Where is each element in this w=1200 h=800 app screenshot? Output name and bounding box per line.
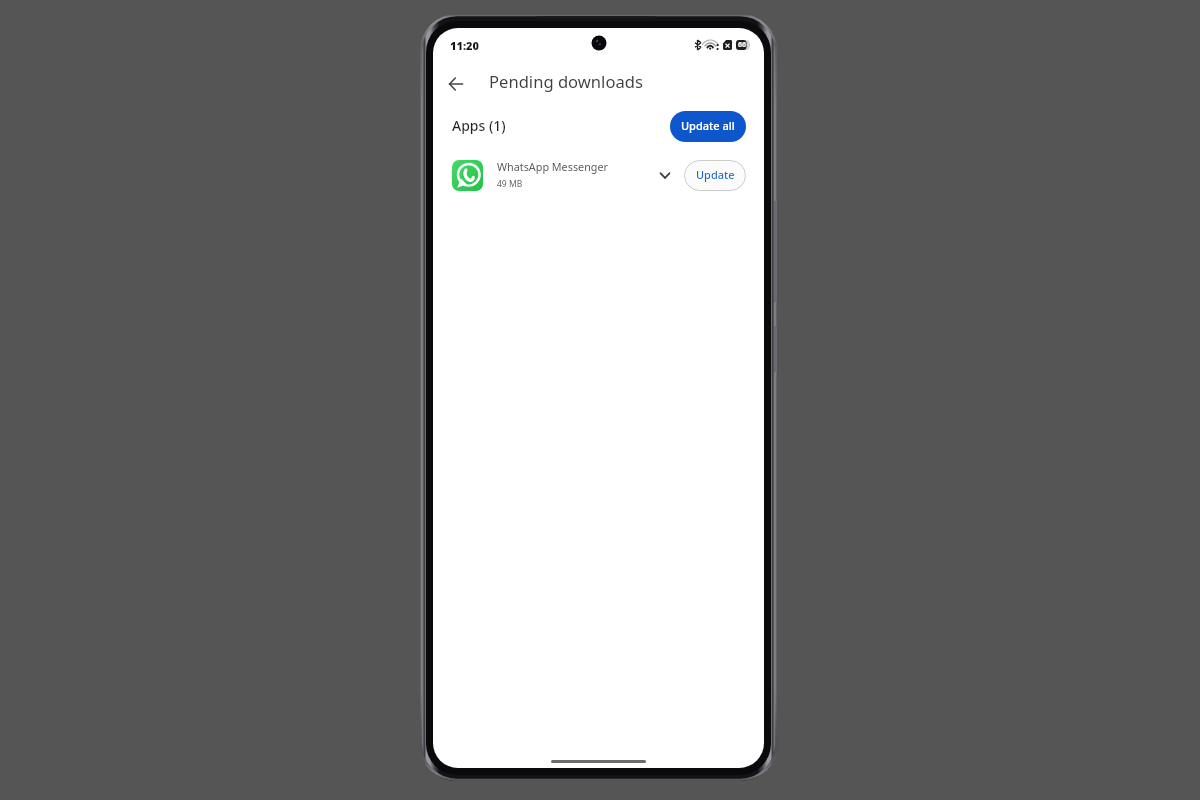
- button[interactable]: Back: [441, 69, 471, 99]
- button[interactable]: Update: [684, 160, 746, 191]
- button[interactable]: Expand details: [653, 163, 677, 187]
- staticText: 11:20: [450, 38, 479, 53]
- staticText: WhatsApp Messenger: [497, 159, 609, 174]
- staticText: 49 MB: [497, 178, 523, 190]
- button[interactable]: Update all: [670, 111, 746, 142]
- staticText: Pending downloads: [489, 70, 643, 93]
- staticText: Update: [696, 167, 735, 182]
- staticText: Update all: [681, 118, 735, 133]
- staticText: 66: [738, 40, 747, 50]
- button[interactable]: WhatsApp Messenger: [433, 152, 764, 198]
- staticText: Apps (1): [452, 116, 506, 135]
